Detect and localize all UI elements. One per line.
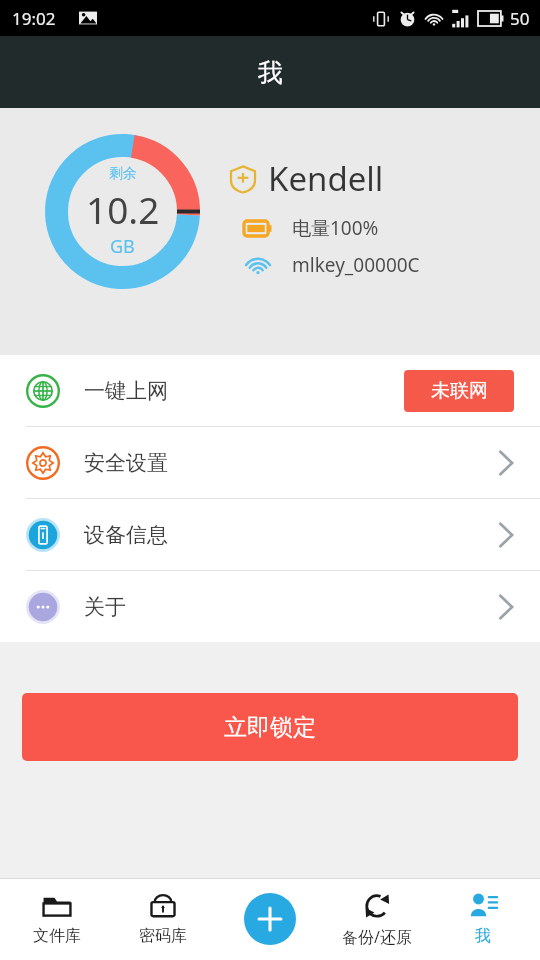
staticText: 10.2 [86,184,160,234]
button[interactable]: Add [220,878,320,960]
staticText: 我 [475,926,491,946]
button[interactable]: 密码库 [113,878,213,960]
button[interactable]: 文件库 [7,878,107,960]
staticText: 安全设置 [84,450,168,476]
staticText: 文件库 [33,926,81,946]
button[interactable]: 我 [433,878,533,960]
staticText: 电量100% [292,215,379,241]
staticText: 设备信息 [84,522,168,548]
staticText: 剩余 [109,165,137,183]
button[interactable]: 备份/还原 [327,878,427,960]
button[interactable]: 设备信息 [0,499,540,570]
staticText: 一键上网 [84,378,168,404]
staticText: 备份/还原 [342,926,412,948]
button[interactable]: 一键上网 [0,355,540,426]
staticText: mlkey_00000C [292,252,420,278]
staticText: 50 [510,7,530,30]
staticText: 我 [258,57,283,88]
staticText: GB [110,234,135,259]
staticText: 未联网 [431,379,488,403]
button[interactable]: 立即锁定 [22,693,518,761]
staticText: 关于 [84,594,126,620]
staticText: Kendell [268,156,384,201]
button[interactable]: 安全设置 [0,427,540,498]
staticText: 密码库 [139,926,187,946]
staticText: 19:02 [12,7,56,30]
button[interactable]: 关于 [0,571,540,642]
staticText: 立即锁定 [224,713,316,742]
button[interactable]: 未联网 [404,370,514,412]
